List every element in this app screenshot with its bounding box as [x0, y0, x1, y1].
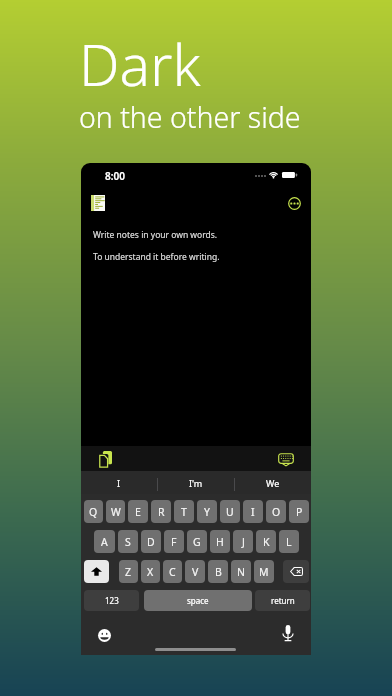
- staticText: space: [187, 595, 209, 606]
- button[interactable]: O: [266, 500, 286, 523]
- button[interactable]: G: [187, 530, 207, 553]
- staticText: C: [169, 565, 176, 579]
- button[interactable]: Copy: [94, 448, 116, 470]
- staticText: A: [101, 535, 108, 549]
- staticText: S: [125, 535, 131, 549]
- staticText: O: [272, 505, 281, 519]
- button[interactable]: Delete: [283, 560, 309, 583]
- button[interactable]: We: [234, 471, 311, 494]
- button[interactable]: V: [185, 560, 205, 583]
- staticText: Z: [125, 565, 132, 579]
- button[interactable]: Shift: [84, 560, 109, 583]
- staticText: H: [216, 535, 224, 549]
- button[interactable]: A: [94, 530, 115, 553]
- button[interactable]: F: [164, 530, 184, 553]
- staticText: U: [226, 505, 234, 519]
- button[interactable]: C: [163, 560, 182, 583]
- staticText: P: [296, 505, 303, 519]
- staticText: 8:00: [105, 169, 125, 183]
- staticText: We: [266, 477, 280, 489]
- button[interactable]: M: [254, 560, 274, 583]
- staticText: 123: [105, 595, 119, 606]
- staticText: on the other side: [79, 98, 301, 137]
- staticText: R: [158, 505, 165, 519]
- button[interactable]: Write notes in your own words.: [81, 223, 311, 443]
- staticText: Dark: [79, 25, 201, 103]
- button[interactable]: W: [106, 500, 125, 523]
- button[interactable]: D: [141, 530, 161, 553]
- staticText: Write notes in your own words.: [93, 229, 218, 241]
- staticText: G: [193, 535, 201, 549]
- button[interactable]: Y: [197, 500, 217, 523]
- button[interactable]: K: [256, 530, 276, 553]
- staticText: F: [171, 535, 177, 549]
- staticText: D: [147, 535, 155, 549]
- staticText: Q: [89, 505, 98, 519]
- staticText: To understand it before writing.: [93, 251, 220, 263]
- button[interactable]: R: [151, 500, 171, 523]
- button[interactable]: H: [210, 530, 230, 553]
- button[interactable]: I: [243, 500, 263, 523]
- staticText: T: [181, 505, 187, 519]
- button[interactable]: Note: [84, 189, 112, 217]
- button[interactable]: More options: [280, 189, 308, 217]
- button[interactable]: P: [289, 500, 309, 523]
- staticText: W: [111, 505, 121, 519]
- staticText: I'm: [189, 477, 203, 489]
- button[interactable]: J: [233, 530, 253, 553]
- button[interactable]: space: [144, 590, 252, 611]
- staticText: I: [117, 477, 121, 489]
- staticText: V: [192, 565, 199, 579]
- staticText: Y: [204, 505, 210, 519]
- button[interactable]: return: [255, 590, 310, 611]
- staticText: return: [271, 595, 295, 606]
- staticText: J: [242, 535, 245, 549]
- staticText: X: [147, 565, 154, 579]
- button[interactable]: Dictation: [275, 621, 300, 646]
- staticText: K: [263, 535, 270, 549]
- button[interactable]: Z: [119, 560, 138, 583]
- button[interactable]: S: [118, 530, 138, 553]
- button[interactable]: B: [208, 560, 228, 583]
- button[interactable]: Hide keyboard: [276, 449, 296, 469]
- staticText: N: [237, 565, 245, 579]
- staticText: L: [286, 535, 292, 549]
- staticText: B: [215, 565, 222, 579]
- button[interactable]: N: [231, 560, 251, 583]
- button[interactable]: I'm: [157, 471, 234, 494]
- button[interactable]: X: [141, 560, 160, 583]
- button[interactable]: I: [81, 471, 157, 494]
- button[interactable]: Q: [84, 500, 103, 523]
- button[interactable]: Emoji: [92, 623, 117, 648]
- button[interactable]: T: [174, 500, 194, 523]
- staticText: E: [135, 505, 141, 519]
- staticText: I: [251, 505, 255, 519]
- staticText: M: [259, 565, 269, 579]
- button[interactable]: U: [220, 500, 240, 523]
- button[interactable]: 123: [84, 590, 139, 611]
- button[interactable]: E: [128, 500, 148, 523]
- button[interactable]: L: [279, 530, 299, 553]
